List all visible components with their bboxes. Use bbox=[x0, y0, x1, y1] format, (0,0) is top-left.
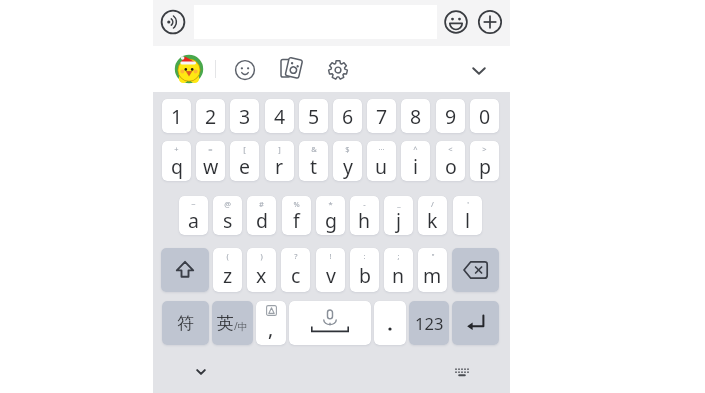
staticText: _ bbox=[397, 199, 401, 209]
staticText: q bbox=[171, 153, 183, 180]
button[interactable]: 0 bbox=[470, 99, 499, 133]
button[interactable]: Collapse panel bbox=[465, 57, 493, 85]
button[interactable]: Backspace bbox=[452, 248, 499, 292]
staticText: + bbox=[174, 144, 179, 154]
button[interactable]: 6 bbox=[333, 99, 362, 133]
staticText: - bbox=[363, 199, 366, 209]
staticText: ; bbox=[397, 251, 400, 261]
button[interactable]: > bbox=[470, 141, 499, 181]
button[interactable]: Stickers bbox=[278, 54, 306, 82]
staticText: # bbox=[259, 199, 264, 209]
button[interactable]: 1 bbox=[162, 99, 191, 133]
button[interactable]: Period bbox=[374, 301, 406, 345]
staticText: 0 bbox=[479, 103, 491, 130]
staticText: , bbox=[268, 316, 274, 342]
button[interactable]: Comma bbox=[256, 301, 286, 345]
staticText: * bbox=[328, 199, 333, 209]
button[interactable]: ; bbox=[384, 248, 413, 292]
staticText: t bbox=[310, 153, 318, 180]
button[interactable]: Sticker pack bbox=[174, 54, 204, 84]
button[interactable]: ··· bbox=[367, 141, 396, 181]
button[interactable]: Emoji bbox=[442, 8, 469, 35]
button[interactable]: Add bbox=[476, 8, 503, 35]
button[interactable]: 符 bbox=[162, 301, 209, 345]
button[interactable]: 英 bbox=[212, 301, 253, 345]
staticText: < bbox=[448, 144, 453, 154]
staticText: [ bbox=[243, 144, 246, 154]
button[interactable]: / bbox=[418, 196, 447, 235]
staticText: 7 bbox=[376, 103, 388, 130]
staticText: w bbox=[203, 153, 219, 180]
staticText: i bbox=[413, 153, 419, 180]
staticText: s bbox=[223, 207, 233, 234]
staticText: / bbox=[431, 199, 434, 209]
staticText: 5 bbox=[308, 103, 320, 130]
staticText: @ bbox=[224, 199, 231, 209]
button[interactable]: * bbox=[316, 196, 345, 235]
button[interactable]: _ bbox=[384, 196, 413, 235]
button[interactable]: Emoticons bbox=[231, 56, 258, 83]
staticText: 4 bbox=[274, 103, 286, 130]
button[interactable]: 3 bbox=[230, 99, 259, 133]
button[interactable]: " bbox=[418, 248, 447, 292]
button[interactable]: @ bbox=[213, 196, 242, 235]
staticText: p bbox=[479, 153, 491, 180]
button[interactable]: ^ bbox=[401, 141, 430, 181]
button[interactable]: [ bbox=[230, 141, 259, 181]
staticText: 符 bbox=[177, 313, 194, 334]
staticText: ' bbox=[467, 199, 469, 209]
button[interactable]: Voice input bbox=[159, 8, 187, 36]
button[interactable]: 5 bbox=[299, 99, 328, 133]
button[interactable]: Space bbox=[289, 301, 371, 345]
button[interactable]: ( bbox=[213, 248, 242, 292]
staticText: 9 bbox=[445, 103, 457, 130]
button[interactable]: $ bbox=[333, 141, 362, 181]
staticText: k bbox=[427, 207, 438, 234]
staticText: /中 bbox=[234, 319, 248, 333]
button[interactable]: 7 bbox=[367, 99, 396, 133]
staticText: & bbox=[311, 144, 317, 154]
button[interactable]: Settings bbox=[324, 56, 351, 83]
button[interactable]: % bbox=[282, 196, 311, 235]
staticText: = bbox=[208, 144, 213, 154]
staticText: u bbox=[375, 153, 388, 180]
button[interactable]: & bbox=[299, 141, 328, 181]
button[interactable]: # bbox=[247, 196, 276, 235]
staticText: $ bbox=[345, 144, 350, 154]
button[interactable]: Hide keyboard bbox=[189, 360, 213, 384]
button[interactable]: 9 bbox=[436, 99, 465, 133]
button[interactable]: ! bbox=[316, 248, 345, 292]
staticText: ~ bbox=[191, 199, 196, 209]
button[interactable]: 2 bbox=[196, 99, 225, 133]
staticText: g bbox=[325, 207, 337, 234]
staticText: 2 bbox=[205, 103, 217, 130]
staticText: ^ bbox=[413, 144, 418, 154]
button[interactable]: - bbox=[350, 196, 379, 235]
staticText: % bbox=[293, 199, 300, 209]
button[interactable]: ? bbox=[281, 248, 310, 292]
button[interactable]: Shift bbox=[161, 248, 209, 292]
button[interactable]: Switch keyboard bbox=[450, 360, 474, 384]
button[interactable]: : bbox=[350, 248, 379, 292]
staticText: y bbox=[343, 153, 353, 180]
button[interactable]: ' bbox=[453, 196, 482, 235]
staticText: d bbox=[256, 207, 268, 234]
button[interactable]: < bbox=[436, 141, 465, 181]
button[interactable]: ] bbox=[265, 141, 294, 181]
button[interactable]: 8 bbox=[401, 99, 430, 133]
staticText: v bbox=[326, 262, 336, 289]
button[interactable]: ) bbox=[247, 248, 276, 292]
staticText: a bbox=[188, 207, 199, 234]
staticText: r bbox=[275, 153, 284, 180]
button[interactable]: ~ bbox=[179, 196, 208, 235]
button[interactable]: + bbox=[162, 141, 191, 181]
staticText: ( bbox=[226, 251, 229, 261]
button[interactable]: Enter bbox=[452, 301, 499, 345]
button[interactable]: = bbox=[196, 141, 225, 181]
button[interactable]: 4 bbox=[265, 99, 294, 133]
staticText: h bbox=[358, 207, 371, 234]
staticText: " bbox=[431, 251, 435, 261]
button[interactable]: 123 bbox=[409, 301, 449, 345]
staticText: m bbox=[423, 262, 442, 289]
